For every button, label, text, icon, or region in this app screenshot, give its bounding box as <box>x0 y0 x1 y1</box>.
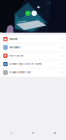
staticText: Wallpapers <box>9 46 20 49</box>
button[interactable]: Recent apps <box>44 126 66 140</box>
staticText: Notifications <box>9 54 23 57</box>
button[interactable]: Wallpapers <box>0 43 66 52</box>
button[interactable]: Home <box>22 126 44 140</box>
button[interactable]: Disable system lock <box>0 68 66 77</box>
staticText: Passcode <box>9 38 17 40</box>
button[interactable]: Notifications <box>0 52 66 60</box>
button[interactable]: Back <box>0 126 22 140</box>
staticText: Disable system lock <box>9 71 30 74</box>
button[interactable]: Passcode <box>0 35 66 43</box>
button[interactable]: Disable logs to turn off screen <box>0 60 66 68</box>
staticText: Disable logs to turn off screen <box>9 63 41 65</box>
